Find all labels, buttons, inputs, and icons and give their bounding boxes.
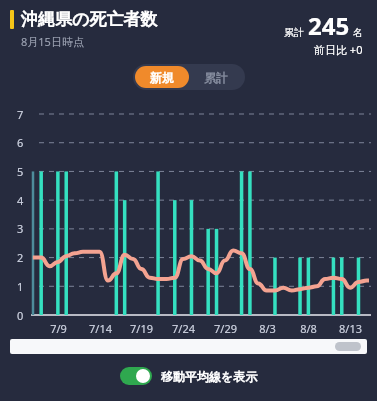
staticText: 4 [17, 193, 24, 208]
button[interactable]: 累計 [189, 66, 243, 88]
staticText: 8/13 [339, 321, 362, 336]
button[interactable]: 移動平均線を表示 [120, 367, 258, 385]
staticText: 名 [353, 26, 363, 39]
staticText: 7/29 [214, 321, 237, 336]
staticText: 8/3 [259, 321, 276, 336]
staticText: 1 [17, 279, 24, 294]
staticText: 8月15日時点 [21, 34, 84, 49]
staticText: 6 [17, 135, 24, 150]
staticText: 8/8 [300, 321, 317, 336]
staticText: 7/14 [89, 321, 112, 336]
staticText: 新規 [150, 70, 174, 85]
staticText: 7/24 [172, 321, 195, 336]
staticText: 7/9 [50, 321, 67, 336]
staticText: 累計 [284, 26, 304, 39]
staticText: 5 [17, 164, 24, 179]
staticText: 3 [17, 221, 24, 236]
staticText: 累計 [204, 70, 228, 85]
staticText: 移動平均線を表示 [161, 369, 258, 384]
staticText: 沖縄県の死亡者数 [21, 9, 158, 30]
staticText: 0 [17, 308, 24, 323]
staticText: 前日比 +0 [314, 42, 363, 57]
button[interactable]: 新規 [135, 66, 189, 88]
staticText: 7/19 [130, 321, 153, 336]
staticText: 7 [17, 107, 24, 122]
staticText: 2 [17, 250, 24, 265]
button[interactable]: 期間スクロール [10, 339, 367, 354]
staticText: 245 [308, 9, 350, 42]
